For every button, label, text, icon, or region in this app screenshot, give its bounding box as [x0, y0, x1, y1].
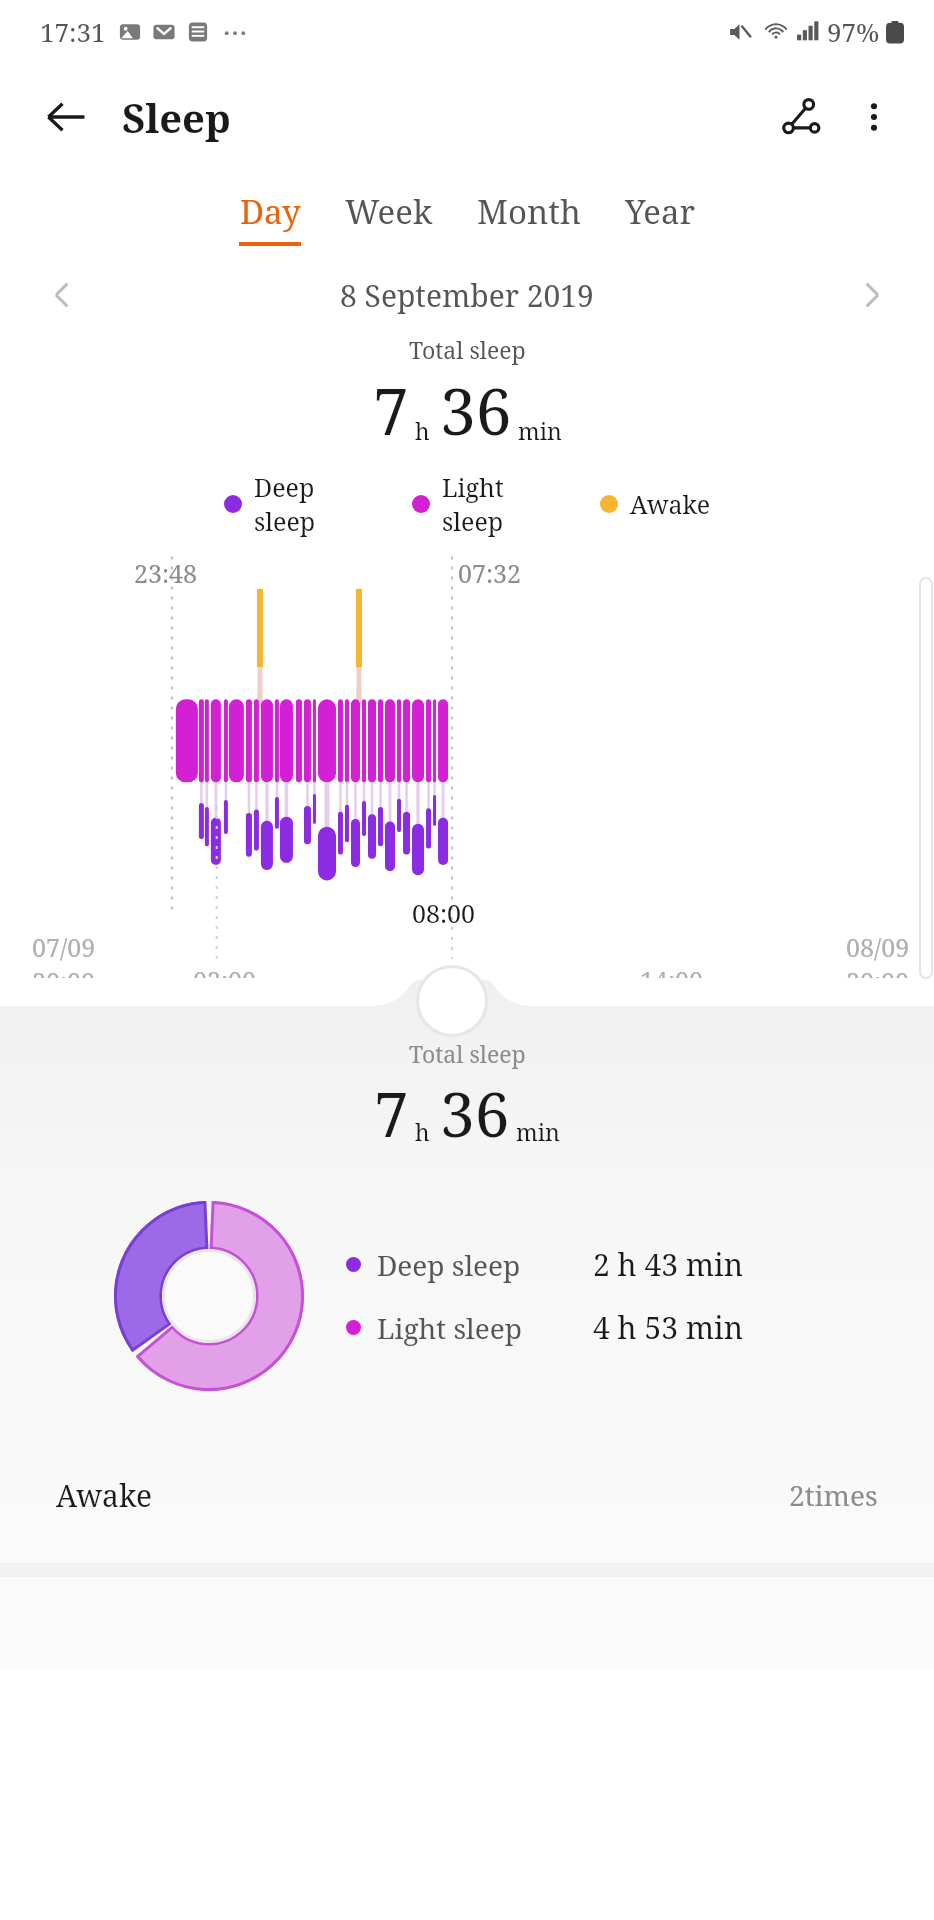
staticText: Month: [477, 189, 581, 234]
staticText: 17:31: [40, 14, 106, 49]
staticText: Day: [240, 189, 301, 234]
staticText: 08:00: [412, 896, 476, 930]
button[interactable]: Month: [477, 189, 581, 246]
staticText: 7: [373, 367, 409, 454]
staticText: 8 September 2019: [340, 275, 594, 316]
staticText: 36: [440, 1071, 510, 1155]
button[interactable]: Awake: [0, 1455, 934, 1535]
staticText: Sleep: [122, 90, 231, 144]
staticText: 14:00: [640, 963, 704, 978]
staticText: min: [518, 415, 562, 446]
staticText: Light: [442, 470, 504, 504]
button[interactable]: Share: [766, 81, 838, 153]
staticText: 07/09: [32, 930, 96, 964]
staticText: 08/09: [846, 930, 910, 964]
staticText: 36: [440, 367, 512, 454]
button[interactable]: Week: [345, 189, 433, 246]
staticText: 7: [374, 1071, 409, 1155]
staticText: min: [516, 1116, 560, 1147]
staticText: sleep: [442, 504, 504, 538]
button[interactable]: Next day: [842, 265, 902, 325]
button[interactable]: Deep sleep: [346, 1244, 744, 1285]
staticText: 97%: [827, 14, 880, 49]
staticText: Week: [345, 189, 433, 234]
staticText: Total sleep: [409, 334, 526, 365]
staticText: Awake: [630, 487, 711, 521]
staticText: Deep sleep: [377, 1246, 521, 1284]
staticText: 2 h 43 min: [593, 1244, 744, 1285]
staticText: 07:32: [458, 556, 522, 590]
button[interactable]: Light sleep: [346, 1307, 744, 1348]
staticText: Year: [625, 189, 696, 234]
button[interactable]: Previous day: [32, 265, 92, 325]
staticText: 23:48: [134, 556, 198, 590]
staticText: 20:00: [32, 964, 96, 978]
staticText: sleep: [254, 504, 316, 538]
button[interactable]: More options: [838, 81, 910, 153]
staticText: 4 h 53 min: [593, 1307, 744, 1348]
staticText: h: [415, 415, 430, 446]
staticText: 20:00: [846, 964, 910, 978]
staticText: Total sleep: [409, 1038, 526, 1069]
button[interactable]: Back: [30, 81, 102, 153]
staticText: Deep: [254, 470, 315, 504]
staticText: 2times: [789, 1476, 878, 1514]
staticText: Awake: [56, 1475, 152, 1516]
staticText: Light sleep: [377, 1309, 522, 1347]
staticText: 02:00: [193, 963, 257, 978]
button[interactable]: Year: [625, 189, 696, 246]
staticText: h: [415, 1116, 430, 1147]
button[interactable]: Day: [239, 189, 301, 246]
